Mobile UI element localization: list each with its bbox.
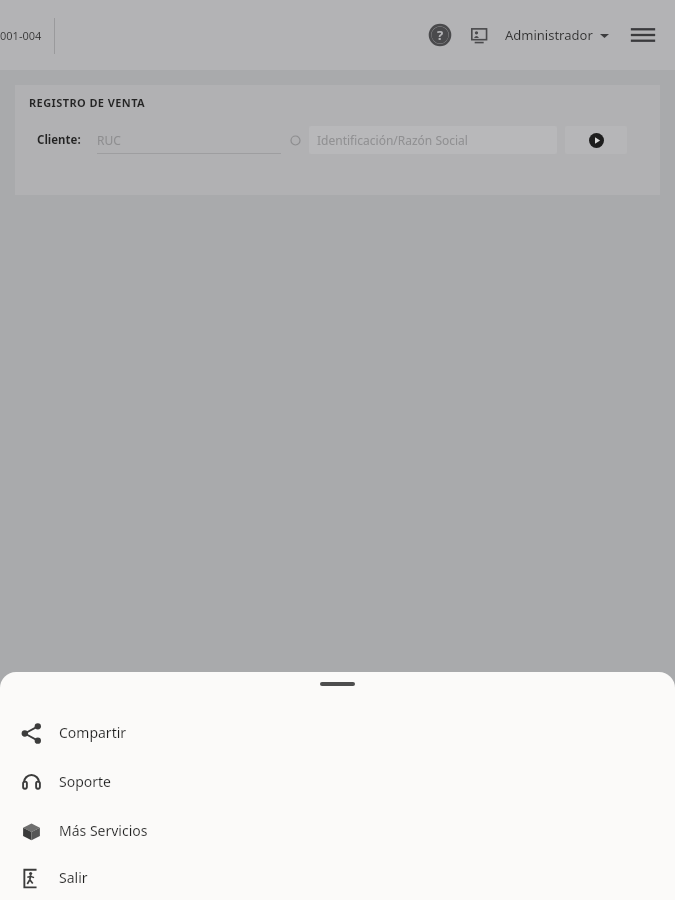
- button[interactable]: Compartir pantalla: [463, 19, 495, 51]
- staticText: Más Servicios: [59, 821, 148, 840]
- staticText: 001-004: [0, 28, 42, 43]
- button[interactable]: Más Servicios: [0, 806, 675, 855]
- staticText: Administrador: [505, 26, 593, 44]
- button[interactable]: Administrador: [503, 20, 611, 50]
- button[interactable]: Ayuda: [423, 18, 457, 52]
- staticText: ?: [437, 26, 444, 44]
- staticText: Identificación/Razón Social: [317, 132, 468, 148]
- button[interactable]: Compartir: [0, 708, 675, 757]
- button[interactable]: Soporte: [0, 757, 675, 806]
- staticText: Cliente:: [37, 132, 81, 148]
- button[interactable]: 001-004: [0, 0, 56, 70]
- button[interactable]: Menú: [625, 17, 661, 53]
- staticText: RUC: [97, 132, 121, 148]
- staticText: REGISTRO DE VENTA: [29, 95, 146, 110]
- staticText: Compartir: [59, 723, 127, 742]
- staticText: Soporte: [59, 772, 111, 791]
- button[interactable]: Salir: [0, 855, 675, 900]
- staticText: Salir: [59, 868, 88, 887]
- button[interactable]: RUC: [97, 126, 281, 154]
- button[interactable]: Identificación/Razón Social: [309, 126, 557, 154]
- button[interactable]: Buscar: [565, 126, 627, 154]
